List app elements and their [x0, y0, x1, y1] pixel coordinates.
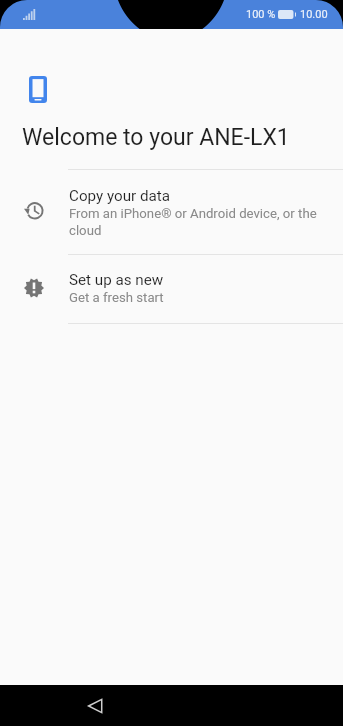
- staticText: Welcome to your ANE-LX1: [22, 124, 290, 151]
- staticText: 10.00: [300, 8, 328, 21]
- staticText: Copy your data: [69, 187, 171, 205]
- button[interactable]: Copy your data: [0, 170, 343, 254]
- button[interactable]: Back: [76, 687, 114, 725]
- staticText: Get a fresh start: [69, 290, 164, 305]
- button[interactable]: Set up as new: [0, 255, 343, 323]
- staticText: 100 %: [246, 8, 276, 21]
- staticText: From an iPhone® or Android device, or th…: [69, 206, 325, 238]
- staticText: Set up as new: [69, 271, 164, 289]
